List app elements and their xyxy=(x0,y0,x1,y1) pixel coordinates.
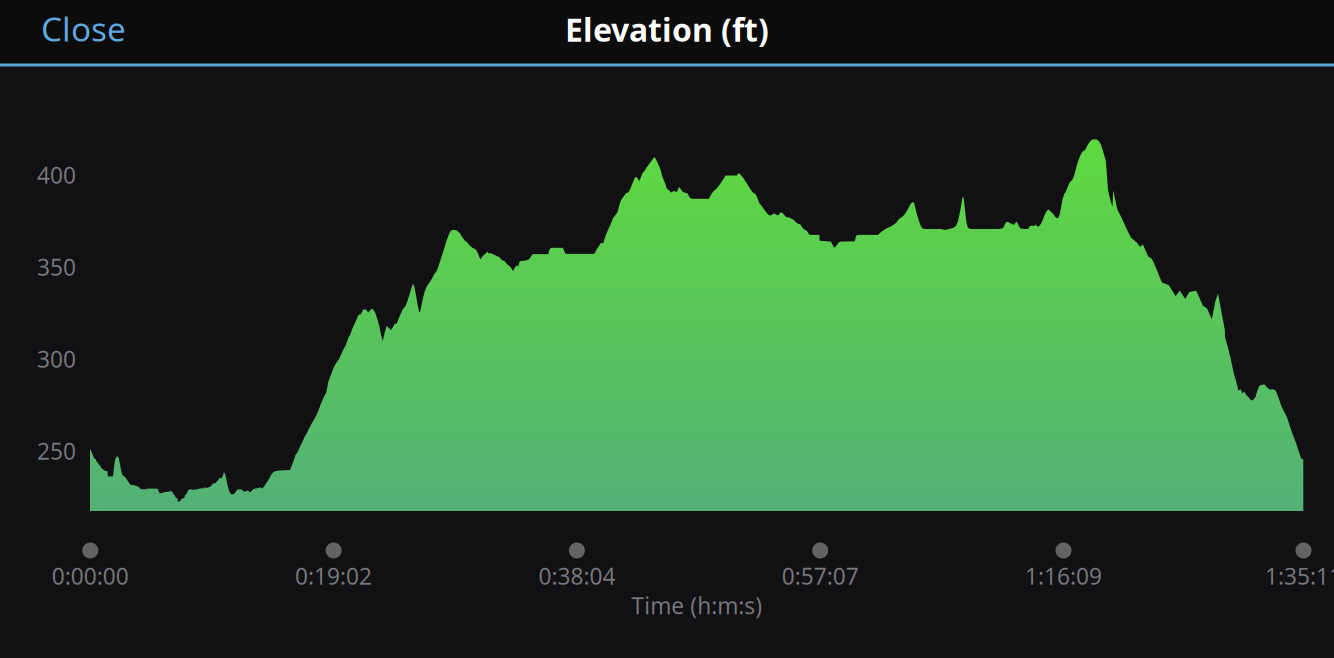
staticText: 0:19:02 xyxy=(295,561,372,591)
staticText: 250 xyxy=(37,436,76,466)
staticText: Close xyxy=(41,6,126,51)
staticText: 350 xyxy=(37,252,76,282)
staticText: 400 xyxy=(37,160,76,190)
staticText: Time (h:m:s) xyxy=(631,590,762,621)
button[interactable]: Close xyxy=(41,3,145,53)
staticText: 1:35:11 xyxy=(1265,561,1334,591)
staticText: Elevation (ft) xyxy=(565,8,769,50)
staticText: 0:57:07 xyxy=(782,561,859,591)
staticText: 300 xyxy=(37,344,76,374)
staticText: 0:38:04 xyxy=(538,561,615,591)
staticText: 0:00:00 xyxy=(52,561,129,591)
staticText: 1:16:09 xyxy=(1025,561,1102,591)
